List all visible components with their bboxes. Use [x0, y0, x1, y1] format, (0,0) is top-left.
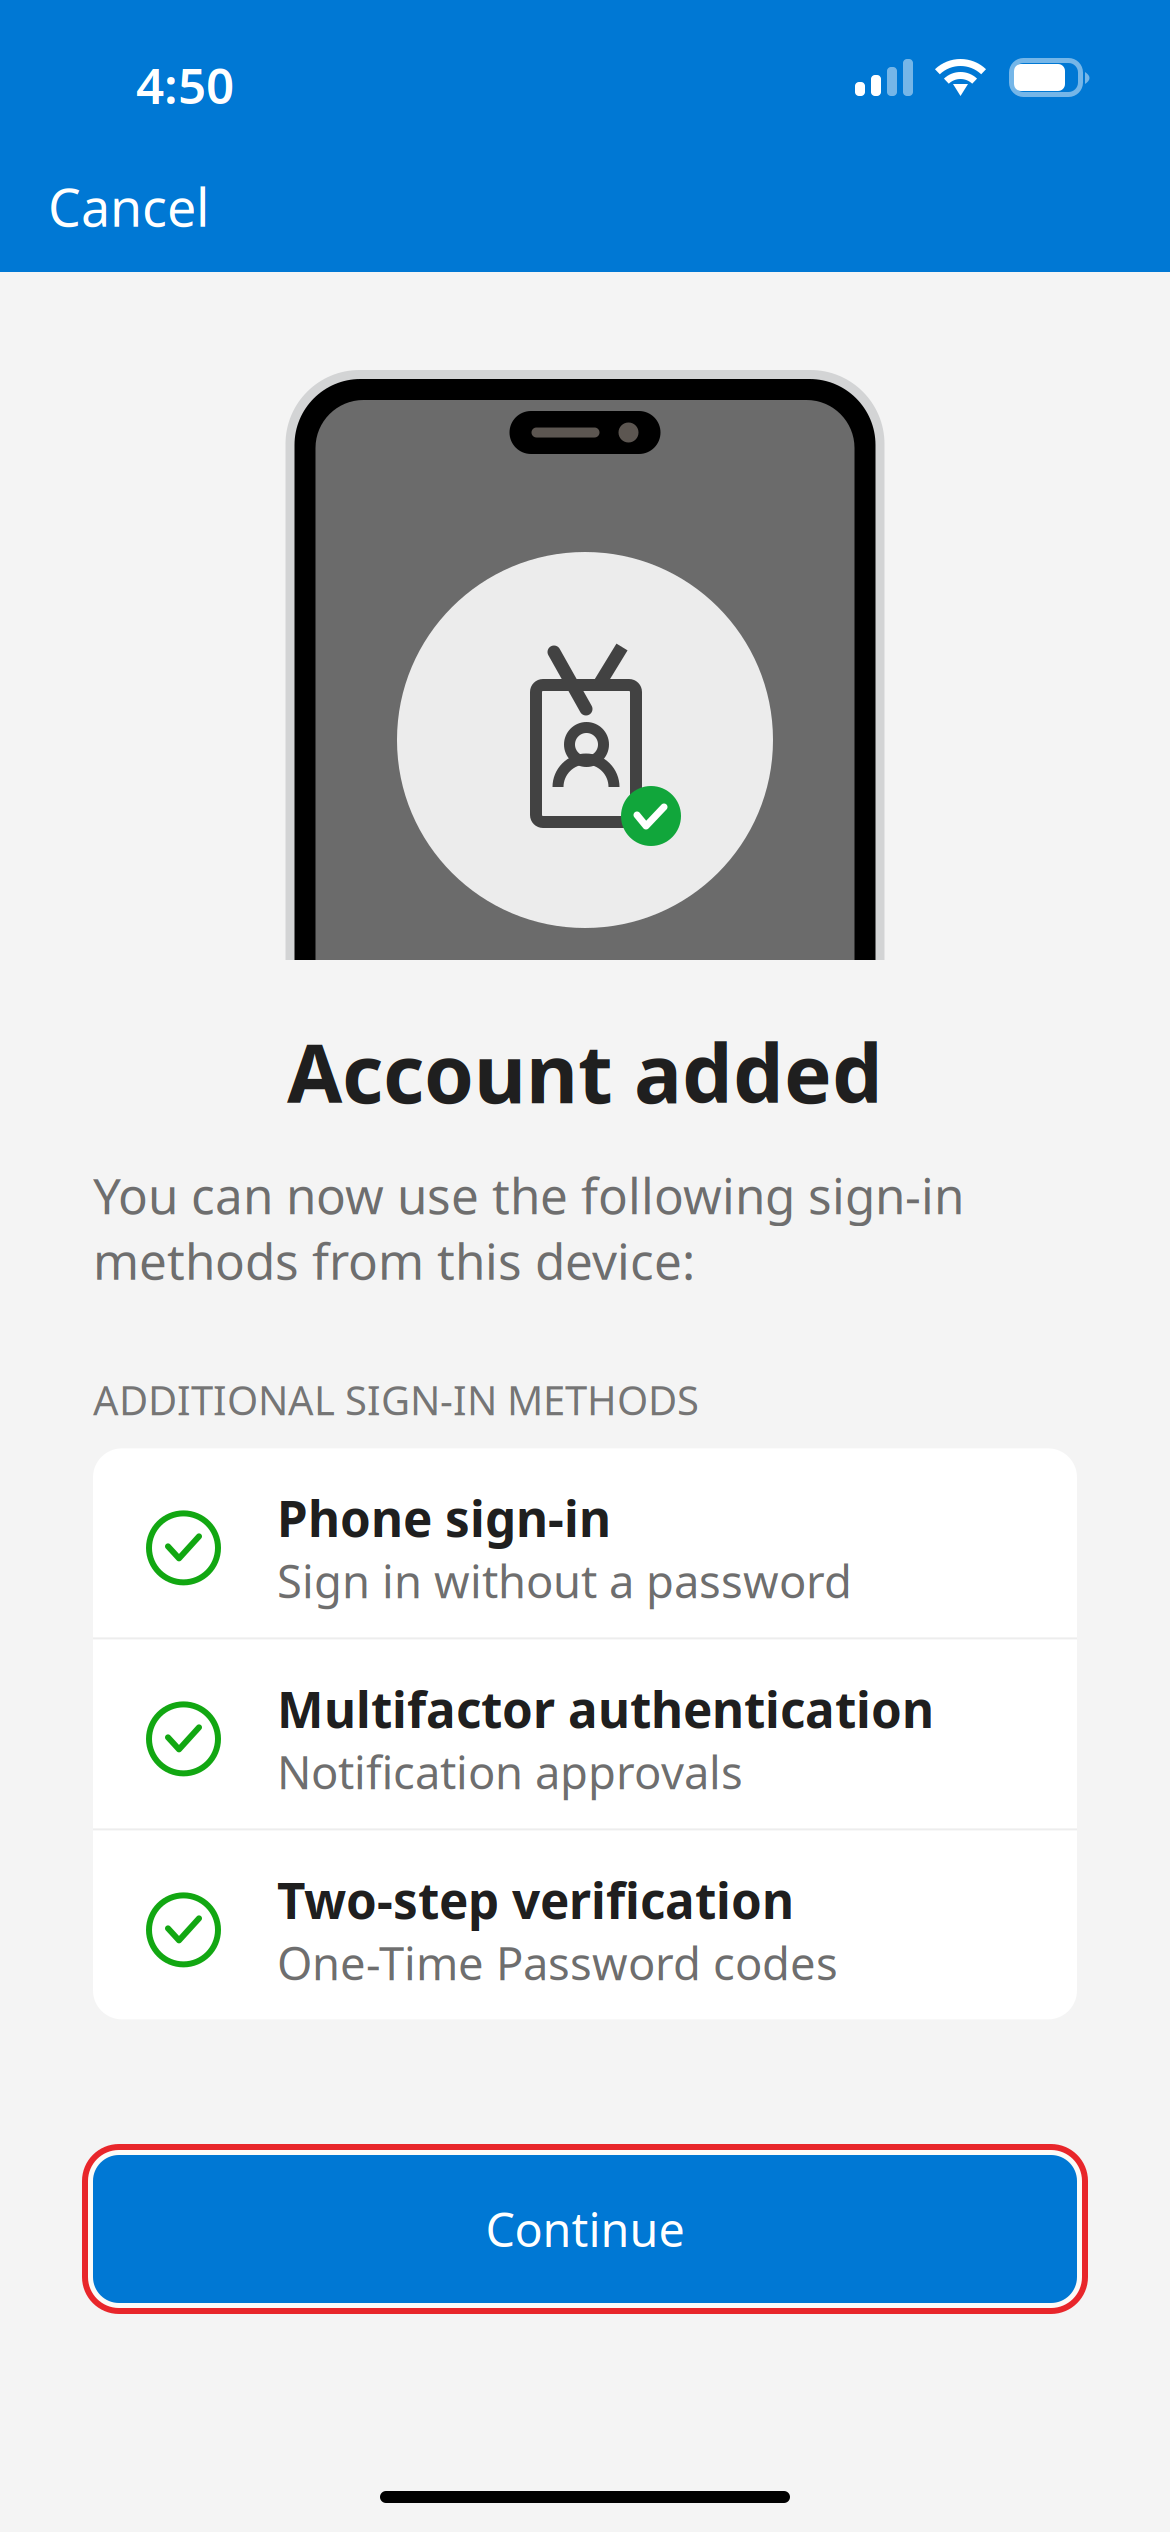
staticText: ADDITIONAL SIGN-IN METHODS: [93, 1373, 699, 1426]
staticText: Notification approvals: [277, 1741, 743, 1802]
button[interactable]: Phone sign-in: [93, 1448, 1077, 1637]
button[interactable]: Multifactor authentication: [93, 1639, 1077, 1828]
staticText: Cancel: [48, 172, 209, 241]
staticText: Two-step verification: [277, 1867, 794, 1932]
staticText: Continue: [485, 2198, 684, 2260]
staticText: 4:50: [136, 52, 234, 117]
button[interactable]: Cancel: [0, 140, 254, 245]
button[interactable]: Continue: [82, 2144, 1088, 2314]
staticText: Account added: [287, 1019, 883, 1125]
staticText: Sign in without a password: [277, 1550, 852, 1611]
staticText: You can now use the following sign-in me…: [93, 1162, 964, 1293]
button[interactable]: Two-step verification: [93, 1830, 1077, 2019]
staticText: One-Time Password codes: [277, 1932, 838, 1993]
staticText: Multifactor authentication: [277, 1676, 934, 1741]
staticText: Phone sign-in: [277, 1485, 611, 1550]
